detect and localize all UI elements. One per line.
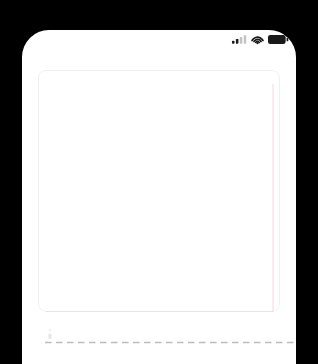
button[interactable] xyxy=(38,70,280,312)
button[interactable]: Marker xyxy=(45,327,55,341)
button[interactable]: Mobile signal strength xyxy=(231,32,247,47)
button[interactable]: Battery full xyxy=(268,33,289,46)
button[interactable]: Wi-Fi connected xyxy=(250,32,265,47)
